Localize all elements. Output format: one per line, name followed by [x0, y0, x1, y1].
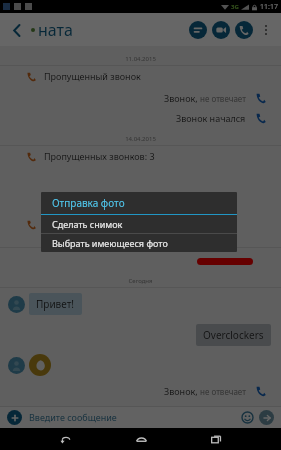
staticText: Введите сообщение [29, 411, 117, 423]
staticText: Привет! [36, 297, 75, 311]
staticText: 3G [231, 3, 239, 11]
button[interactable]: Пропущенных звонков: 3 [26, 150, 281, 162]
button[interactable]: Пропущенный звонок [26, 70, 281, 82]
button[interactable]: Chat [189, 21, 207, 39]
staticText: Сегодня [128, 277, 153, 285]
button[interactable]: Пропущенный звонок [26, 218, 281, 230]
button[interactable]: Video call [212, 21, 230, 39]
button[interactable]: Сделать снимок [41, 215, 237, 233]
staticText: Звонок, [164, 385, 198, 397]
staticText: не отвечает [198, 93, 246, 104]
button[interactable]: Send [259, 410, 274, 425]
button[interactable] [29, 354, 51, 376]
staticText: Пропущенных звонков: 3 [44, 150, 155, 162]
button[interactable]: Back [55, 429, 75, 449]
button[interactable]: More options [257, 21, 275, 39]
staticText: Overclockers [203, 328, 264, 342]
button[interactable]: Back [6, 19, 28, 41]
staticText: Выбрать имеющееся фото [52, 237, 168, 249]
button[interactable]: Home [131, 429, 151, 449]
button[interactable]: Привет! [29, 293, 82, 315]
staticText: Звонок, [164, 92, 198, 104]
button[interactable]: Recents [206, 429, 226, 449]
button[interactable]: Overclockers [196, 324, 271, 346]
button[interactable]: Звонок, [0, 385, 267, 397]
staticText: Звонок начался [176, 112, 246, 124]
button[interactable]: Звонок, [0, 92, 267, 104]
staticText: не отвечает [198, 386, 246, 397]
staticText: Сделать снимок [52, 218, 123, 230]
staticText: Пропущенный звонок [44, 218, 141, 230]
staticText: Пропущенный звонок [44, 70, 141, 82]
staticText: ната [38, 19, 73, 41]
staticText: Отправка фото [52, 196, 125, 210]
staticText: 11.04.2015 [125, 55, 156, 63]
staticText: воскресенье [122, 237, 159, 245]
button[interactable]: Emoji [241, 411, 254, 424]
button[interactable]: Выбрать имеющееся фото [41, 234, 237, 252]
staticText: 14.04.2015 [125, 135, 156, 143]
button[interactable]: Звонок начался [0, 112, 267, 124]
button[interactable]: Введите сообщение [29, 411, 241, 423]
button[interactable]: Attach [7, 410, 22, 425]
staticText: 11:17 [260, 2, 278, 12]
button[interactable]: Call [235, 21, 253, 39]
